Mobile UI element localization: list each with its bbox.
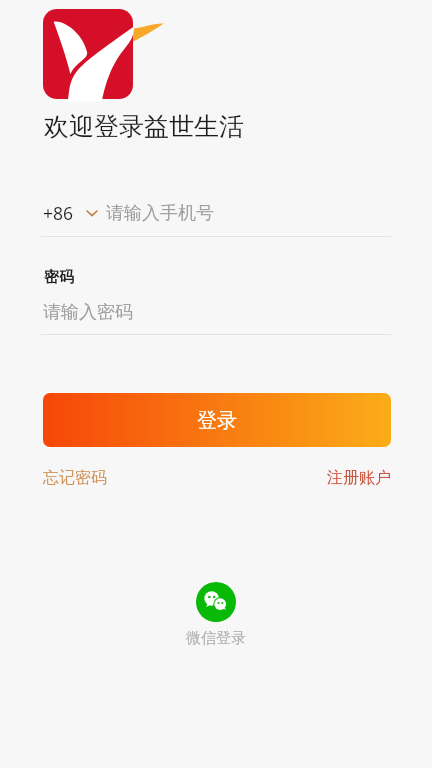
button[interactable]: 忘记密码	[43, 465, 107, 491]
button[interactable]: 登录	[43, 393, 391, 447]
button[interactable]: 注册账户	[327, 465, 391, 491]
button[interactable]: WeChat login	[186, 582, 246, 648]
staticText: 密码	[44, 268, 74, 287]
other: WeChat login	[196, 582, 236, 622]
staticText: 请输入手机号	[106, 202, 214, 225]
staticText: 登录	[197, 408, 237, 433]
staticText: 请输入密码	[43, 301, 133, 324]
staticText: 微信登录	[186, 629, 246, 648]
staticText: 欢迎登录益世生活	[44, 111, 244, 142]
button[interactable]: Select country code	[43, 201, 97, 225]
staticText: +86	[43, 201, 74, 225]
